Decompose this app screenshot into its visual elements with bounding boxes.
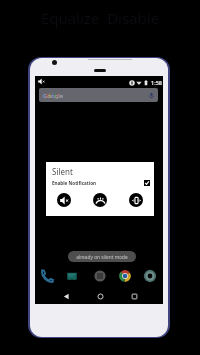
- staticText: Google: [43, 92, 64, 100]
- other: Voice search: [148, 92, 155, 99]
- button[interactable]: Do not disturb: [93, 193, 107, 207]
- button[interactable]: Enable Notification: [52, 179, 150, 187]
- button[interactable]: Google: [39, 88, 158, 102]
- button[interactable]: Silent mode: [57, 193, 71, 207]
- staticText: already on silent mode: [68, 254, 136, 261]
- button[interactable]: Chrome: [117, 268, 133, 284]
- staticText: Equalize Disable: [0, 8, 200, 28]
- button[interactable]: All apps: [92, 268, 108, 284]
- button[interactable]: Vibrate: [129, 193, 143, 207]
- staticText: Silent: [52, 166, 73, 177]
- other: Enable Notification checkbox: [144, 180, 150, 186]
- button[interactable]: Messages: [64, 268, 80, 284]
- button[interactable]: Recents: [127, 289, 141, 303]
- button[interactable]: Camera: [142, 268, 158, 284]
- button[interactable]: Phone: [38, 268, 54, 284]
- button[interactable]: Home: [93, 289, 107, 303]
- staticText: Enable Notification: [52, 180, 96, 186]
- button[interactable]: Back: [59, 289, 73, 303]
- staticText: 1:58: [151, 79, 162, 86]
